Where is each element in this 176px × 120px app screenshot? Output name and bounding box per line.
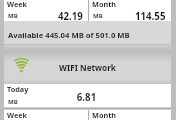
staticText: 114.55 (135, 10, 166, 23)
staticText: MB (8, 12, 18, 20)
staticText: MB (8, 98, 18, 106)
staticText: 42.19 (58, 10, 83, 23)
staticText: MB (93, 12, 103, 20)
staticText: 6.81 (3, 91, 170, 104)
other: WiFi (13, 56, 30, 74)
staticText: Week (7, 110, 28, 120)
staticText: Today (7, 84, 29, 94)
button[interactable]: Week (4, 0, 88, 22)
button[interactable]: Month (89, 0, 171, 22)
staticText: Week (7, 0, 28, 9)
staticText: Available 445.04 MB of 501.0 MB (8, 30, 130, 40)
staticText: Month (92, 110, 117, 120)
button[interactable]: Week (4, 110, 88, 120)
button[interactable]: Today (4, 84, 171, 107)
staticText: Month (92, 0, 117, 9)
button[interactable]: WiFi (4, 45, 171, 85)
staticText: WIFI Network (4, 62, 171, 73)
button[interactable]: Month (89, 110, 171, 120)
